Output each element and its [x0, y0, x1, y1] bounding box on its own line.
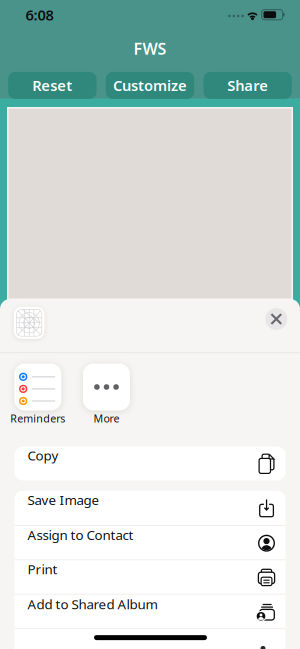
- staticText: Assign to Contact: [27, 526, 133, 544]
- button[interactable]: More: [75, 357, 137, 421]
- staticText: 6:08: [25, 5, 53, 25]
- button[interactable]: Add to Shared Album: [14, 595, 285, 629]
- button[interactable]: Customize: [106, 72, 194, 99]
- staticText: Reset: [32, 76, 72, 95]
- staticText: Print: [27, 560, 57, 578]
- staticText: FWS: [133, 38, 166, 59]
- staticText: Customize: [113, 76, 187, 95]
- button[interactable]: Copy: [14, 446, 285, 481]
- staticText: Save Image: [27, 491, 99, 509]
- button[interactable]: Assign to Contact: [14, 526, 285, 560]
- button[interactable]: Share: [203, 72, 292, 99]
- staticText: More: [93, 411, 119, 425]
- staticText: Add to Shared Album: [27, 595, 157, 613]
- staticText: Reminders: [10, 411, 65, 425]
- button[interactable]: Print: [14, 560, 285, 595]
- staticText: Copy: [27, 446, 58, 464]
- button[interactable]: Reminders: [7, 357, 69, 421]
- button[interactable]: Save Image: [14, 491, 285, 525]
- staticText: Share: [227, 76, 268, 95]
- button[interactable]: [265, 308, 287, 330]
- button[interactable]: Reset: [8, 72, 96, 99]
